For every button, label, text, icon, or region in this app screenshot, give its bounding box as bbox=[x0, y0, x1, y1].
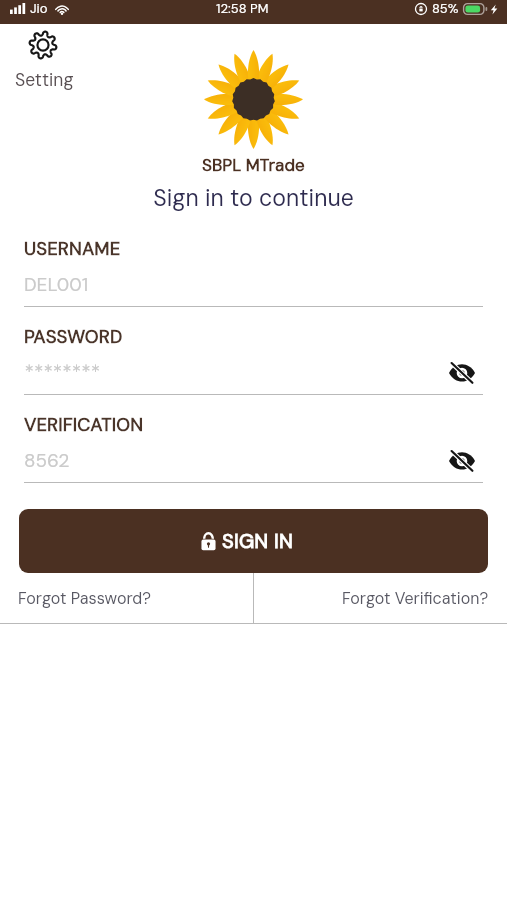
button[interactable]: Toggle password visibility bbox=[447, 357, 477, 387]
button[interactable]: Forgot Verification? bbox=[254, 573, 507, 623]
button[interactable]: SIGN IN bbox=[19, 509, 488, 573]
staticText: SIGN IN bbox=[222, 528, 294, 554]
staticText: Forgot Password? bbox=[18, 588, 152, 609]
staticText: Setting bbox=[15, 69, 74, 92]
button[interactable]: Forgot Password? bbox=[0, 573, 253, 623]
staticText: SBPL MTrade bbox=[202, 154, 305, 176]
staticText: 85% bbox=[432, 0, 459, 17]
staticText: Jio bbox=[30, 0, 48, 17]
staticText: 8562 bbox=[24, 448, 453, 473]
staticText: DEL001 bbox=[24, 272, 483, 297]
staticText: USERNAME bbox=[24, 237, 121, 261]
button[interactable]: Toggle password visibility bbox=[447, 445, 477, 475]
staticText: 12:58 PM bbox=[216, 0, 269, 17]
button[interactable]: Setting bbox=[12, 28, 77, 94]
staticText: Sign in to continue bbox=[0, 183, 507, 213]
staticText: Forgot Verification? bbox=[342, 588, 489, 609]
staticText: PASSWORD bbox=[24, 325, 123, 349]
staticText: ∗∗∗∗∗∗∗∗ bbox=[24, 361, 453, 375]
staticText: VERIFICATION bbox=[24, 413, 144, 437]
